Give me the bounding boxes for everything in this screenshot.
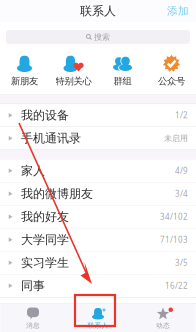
- button[interactable]: 同事: [0, 274, 196, 297]
- staticText: 3/4: [175, 188, 188, 199]
- staticText: 添加: [167, 4, 189, 17]
- button[interactable]: 群组: [98, 51, 147, 91]
- staticText: 动态: [156, 321, 170, 330]
- staticText: 我的设备: [21, 108, 69, 123]
- button[interactable]: 动态: [130, 303, 195, 332]
- staticText: 1/2: [175, 110, 188, 120]
- button[interactable]: 实习学生: [0, 251, 196, 274]
- button[interactable]: 添加: [160, 0, 196, 21]
- staticText: 16/22: [165, 280, 188, 291]
- button[interactable]: 我的微博朋友: [0, 182, 196, 205]
- button[interactable]: 搜索: [6, 30, 190, 44]
- staticText: 4/9: [175, 165, 188, 176]
- button[interactable]: 手机通讯录: [0, 127, 196, 150]
- staticText: 群组: [113, 75, 131, 87]
- button[interactable]: 特别关心: [49, 51, 98, 91]
- staticText: 我的微博朋友: [21, 186, 93, 201]
- staticText: 手机通讯录: [21, 131, 81, 146]
- button[interactable]: 新朋友: [0, 51, 49, 91]
- staticText: 大学同学: [21, 232, 69, 247]
- staticText: 消息: [26, 321, 40, 330]
- button[interactable]: 我的好友: [0, 205, 196, 228]
- button[interactable]: 大学同学: [0, 228, 196, 251]
- staticText: 新朋友: [11, 75, 38, 87]
- staticText: 同事: [21, 278, 45, 293]
- staticText: 公众号: [158, 75, 185, 87]
- staticText: 34/102: [160, 211, 188, 222]
- staticText: 联系人: [87, 321, 108, 330]
- button[interactable]: 家人: [0, 159, 196, 182]
- staticText: 特别关心: [55, 75, 91, 87]
- staticText: 联系人: [80, 4, 116, 18]
- staticText: 家人: [21, 163, 45, 178]
- staticText: 未启用: [164, 133, 188, 143]
- staticText: 实习学生: [21, 255, 69, 270]
- staticText: 71/103: [160, 234, 188, 245]
- button[interactable]: 消息: [0, 303, 65, 332]
- button[interactable]: 我的设备: [0, 104, 196, 127]
- button[interactable]: 公众号: [147, 51, 196, 91]
- staticText: 搜索: [94, 32, 110, 42]
- button[interactable]: 联系人: [65, 303, 130, 332]
- staticText: 我的好友: [21, 209, 69, 224]
- staticText: 3/5: [175, 257, 188, 268]
